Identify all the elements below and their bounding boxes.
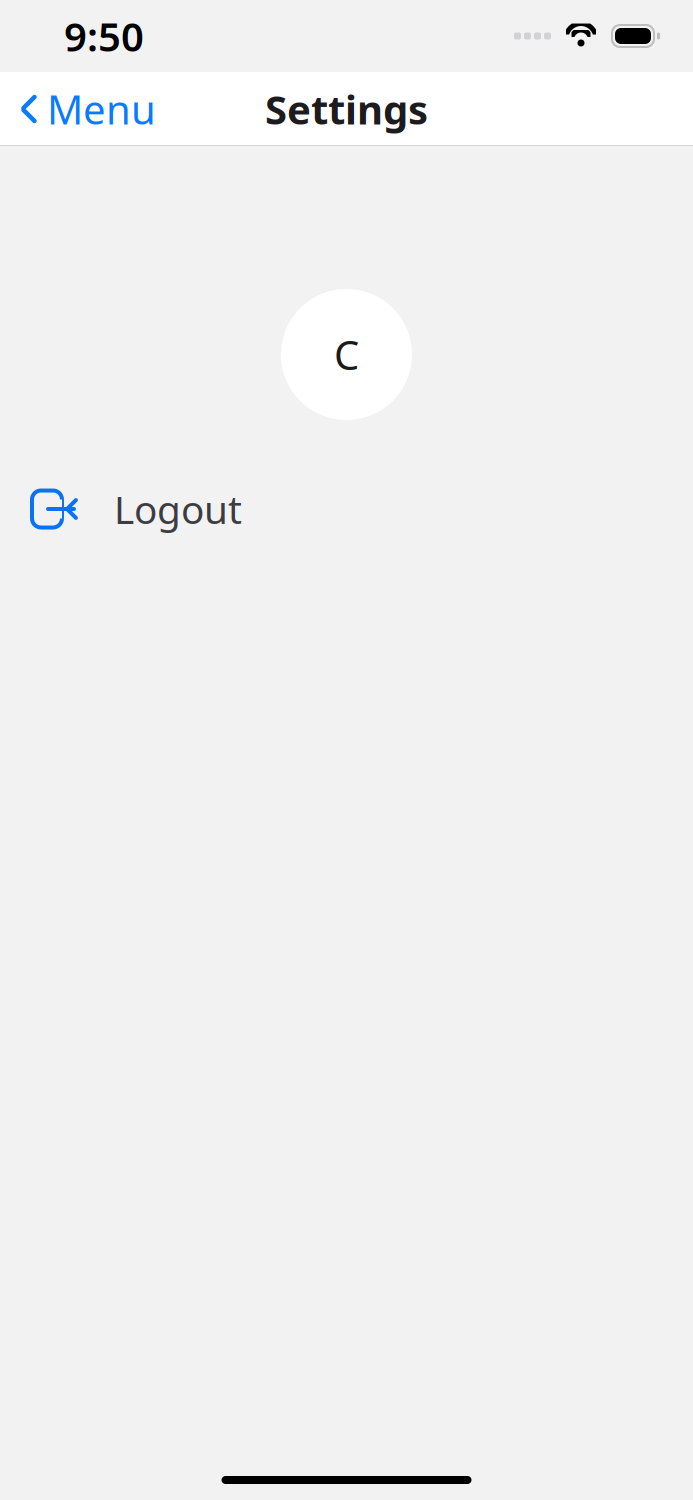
staticText: C: [334, 328, 359, 381]
staticText: Settings: [265, 82, 428, 135]
staticText: Logout: [114, 483, 242, 535]
staticText: Menu: [47, 82, 156, 135]
staticText: 9:50: [64, 9, 144, 62]
button[interactable]: Logout: [0, 478, 693, 540]
button[interactable]: Menu: [0, 72, 156, 145]
